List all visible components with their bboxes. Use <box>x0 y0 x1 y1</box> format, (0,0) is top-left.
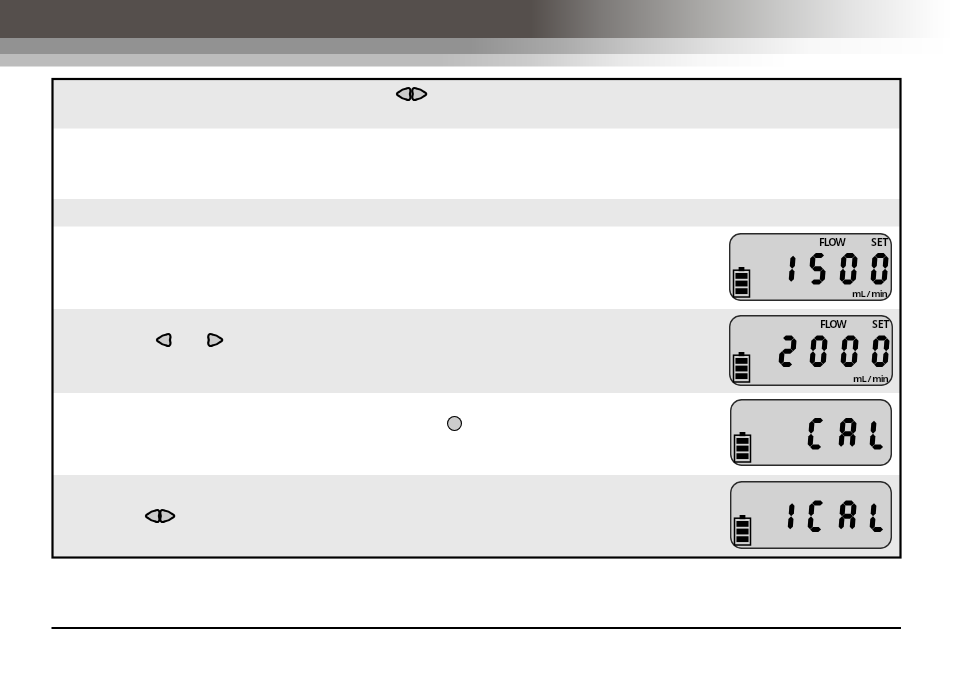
staticText: SET <box>872 317 890 331</box>
button[interactable]: Flow display 1500 mL per min <box>729 233 892 301</box>
button[interactable]: Display showing CAL <box>730 399 892 466</box>
button[interactable]: Next step <box>160 508 177 524</box>
button[interactable]: Next <box>412 86 429 102</box>
staticText: mL / min <box>853 372 888 385</box>
staticText: SET <box>871 235 889 249</box>
staticText: FLOW <box>820 317 846 331</box>
button[interactable]: Display showing 1CAL <box>730 481 892 549</box>
staticText: mL / min <box>852 287 887 300</box>
button[interactable]: Previous <box>394 86 411 102</box>
button[interactable]: Increase flow <box>208 332 225 348</box>
button[interactable]: Decrease flow <box>154 332 171 348</box>
button[interactable]: Previous step <box>143 508 160 524</box>
button[interactable]: Flow display 2000 mL per min <box>729 315 893 386</box>
button[interactable]: Enter <box>447 416 462 431</box>
staticText: FLOW <box>819 235 845 249</box>
